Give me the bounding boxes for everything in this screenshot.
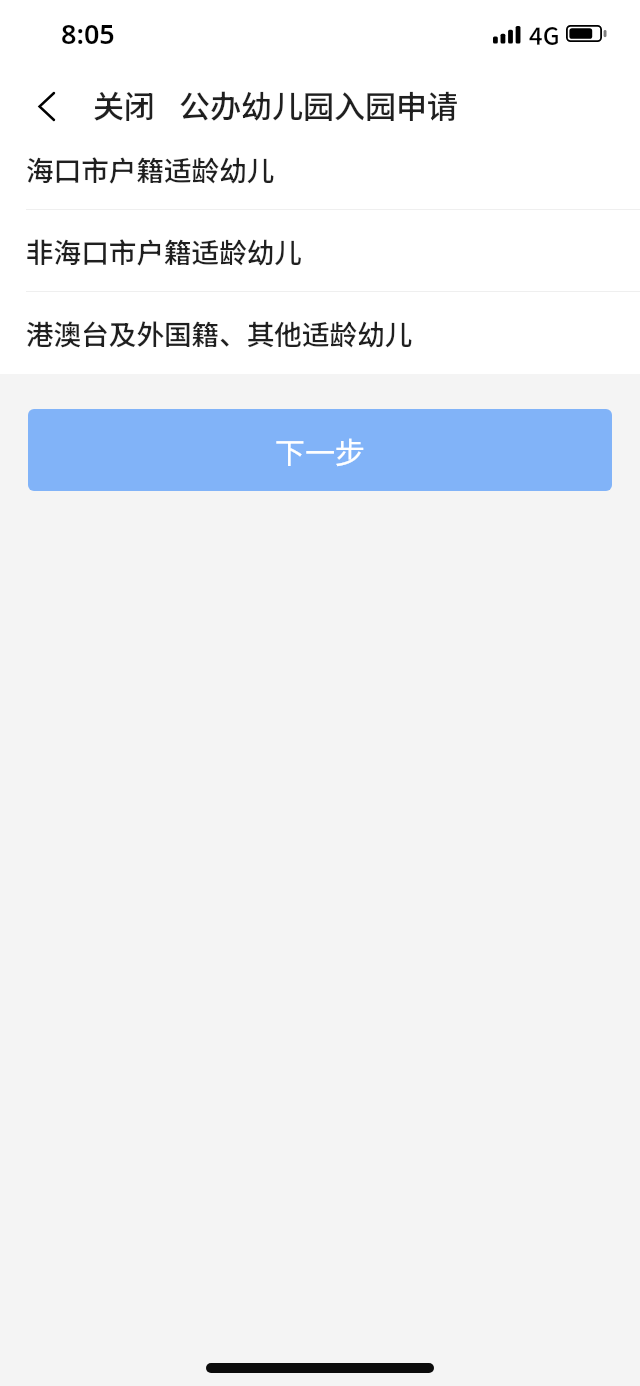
staticText: 公办幼儿园入园申请 <box>179 82 458 127</box>
staticText: 8:05 <box>61 15 115 52</box>
staticText: 港澳台及外国籍、其他适龄幼儿 <box>26 313 413 353</box>
button[interactable]: 下一步 <box>28 409 612 491</box>
staticText: 海口市户籍适龄幼儿 <box>26 149 275 189</box>
button[interactable]: 海口市户籍适龄幼儿 <box>0 128 640 210</box>
button[interactable]: 非海口市户籍适龄幼儿 <box>0 210 640 292</box>
staticText: 关闭 <box>93 82 155 127</box>
button[interactable]: 返回并关闭 <box>38 77 155 135</box>
staticText: 下一步 <box>275 429 365 472</box>
staticText: 非海口市户籍适龄幼儿 <box>26 231 302 271</box>
staticText: 4G <box>529 17 560 52</box>
button[interactable]: 港澳台及外国籍、其他适龄幼儿 <box>0 292 640 374</box>
